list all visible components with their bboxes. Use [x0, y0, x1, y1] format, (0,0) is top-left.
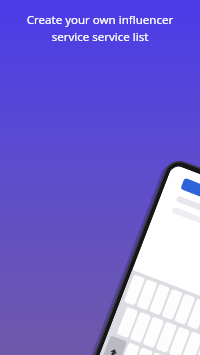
button[interactable]: Create your own influencer service servi… [10, 12, 190, 44]
